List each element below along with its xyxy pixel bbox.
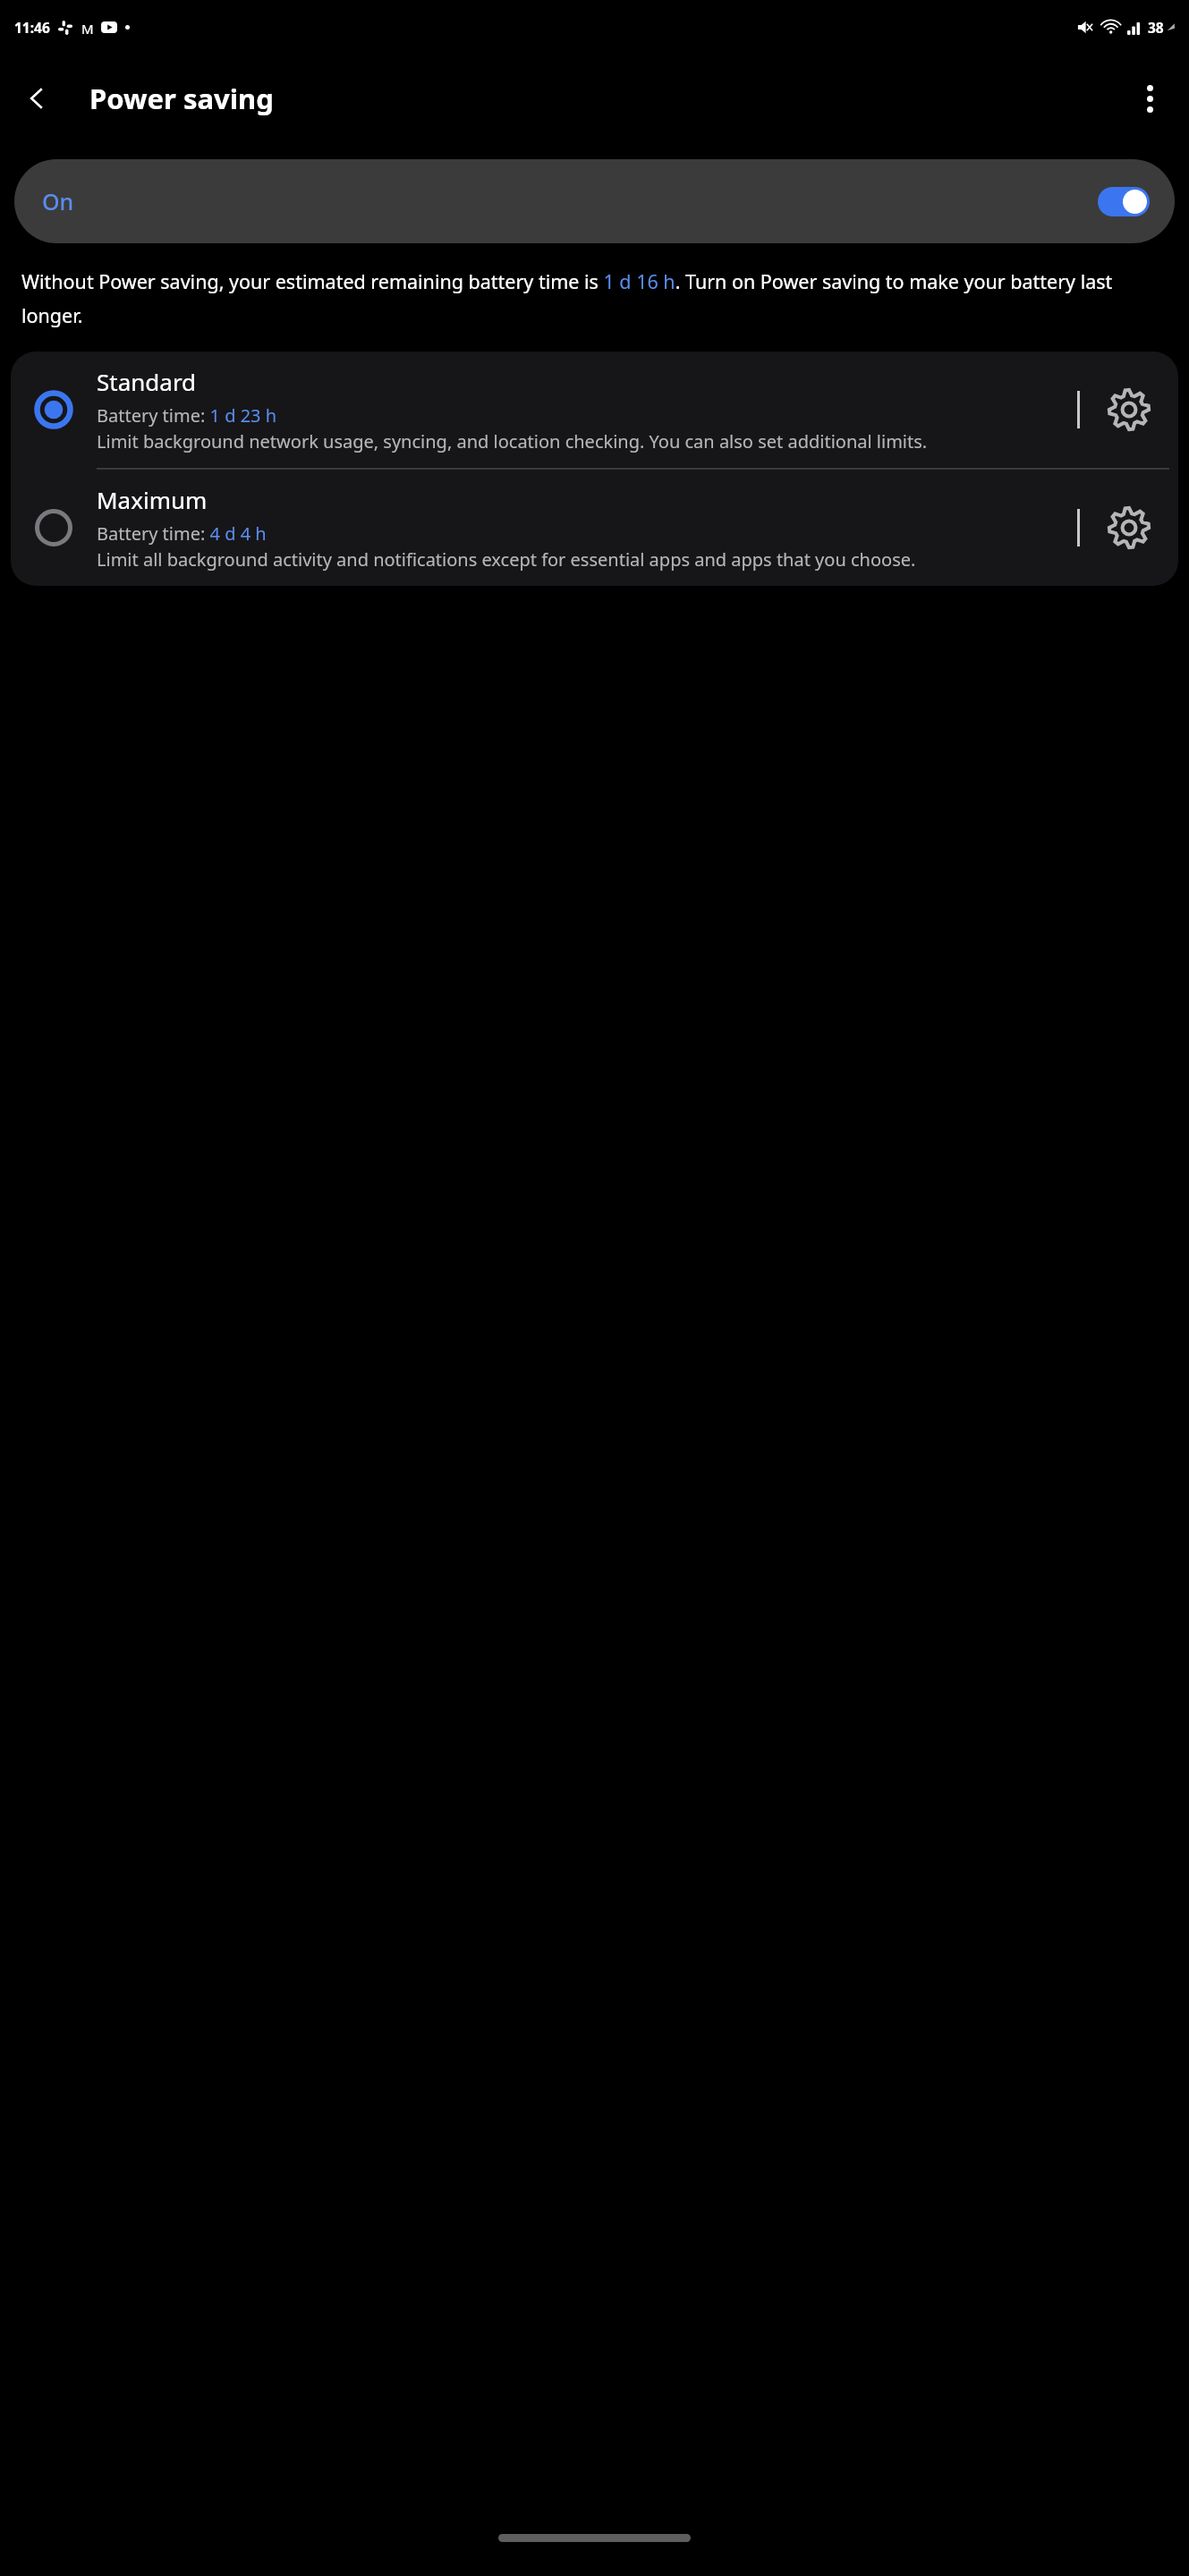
staticText: On — [42, 186, 74, 216]
staticText: Battery time: 4 d 4 h — [97, 521, 267, 546]
button[interactable]: On — [14, 159, 1175, 243]
staticText: Without Power saving, your estimated rem… — [21, 268, 1168, 328]
staticText: Limit background network usage, syncing,… — [97, 429, 928, 453]
staticText: Power saving — [89, 80, 274, 117]
button[interactable]: Standard settings — [1080, 374, 1178, 445]
button[interactable]: Back — [7, 68, 68, 129]
staticText: 11:46 — [14, 18, 50, 37]
button[interactable]: Maximum — [11, 470, 1178, 586]
button[interactable]: More options — [1121, 70, 1178, 127]
button[interactable]: Standard selected — [11, 352, 1178, 468]
staticText: Battery time: 1 d 23 h — [97, 403, 277, 428]
staticText: 38 — [1148, 18, 1164, 37]
other: Standard selected — [11, 374, 97, 445]
staticText: Maximum — [97, 484, 208, 515]
other: Maximum — [11, 492, 97, 563]
staticText: M — [81, 20, 94, 35]
button[interactable]: Maximum settings — [1080, 492, 1178, 563]
staticText: Standard — [97, 366, 197, 397]
staticText: Limit all background activity and notifi… — [97, 547, 916, 572]
